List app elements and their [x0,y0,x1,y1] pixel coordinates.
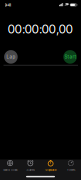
button[interactable]: Stopwatch [40,160,61,172]
staticText: Start [65,54,76,60]
staticText: 0 [31,22,39,36]
staticText: Alarms [26,169,34,172]
staticText: 0 [59,22,67,36]
staticText: : [22,22,25,36]
staticText: 0 [48,22,56,36]
staticText: , [56,22,59,36]
staticText: 0 [14,22,22,36]
staticText: 9:41 [4,3,11,7]
staticText: 0 [65,22,73,36]
button[interactable]: Alarms [20,160,40,172]
button[interactable]: World Clock [0,160,20,172]
staticText: Stopwatch [45,169,56,172]
button[interactable]: Timers [61,160,81,172]
staticText: 0 [42,22,50,36]
staticText: 0 [25,22,33,36]
button[interactable]: Lap [4,50,18,64]
staticText: World Clock [3,169,17,172]
staticText: 0 [8,22,16,36]
staticText: Timers [67,169,75,172]
staticText: : [39,22,42,36]
button[interactable]: Start [63,50,77,64]
staticText: Lap [6,54,15,60]
